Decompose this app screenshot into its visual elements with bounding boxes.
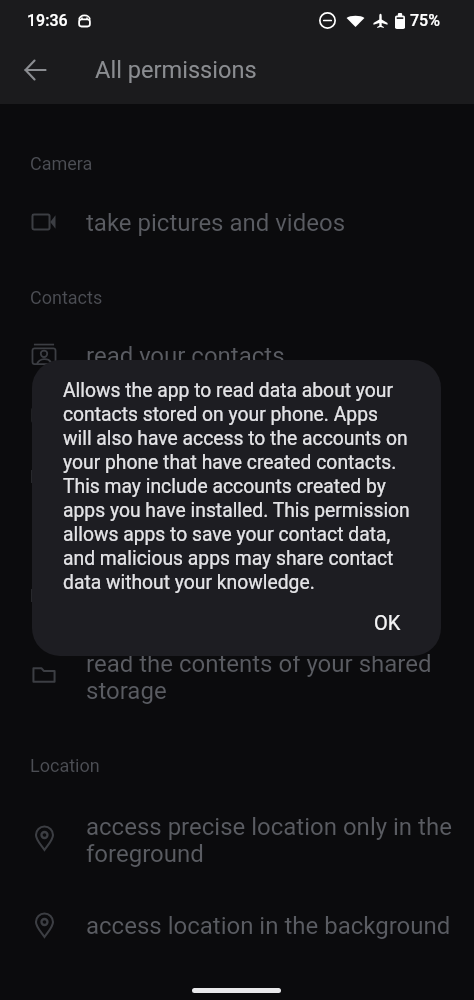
staticText: read the contents of your shared storage <box>86 651 464 705</box>
button[interactable]: access precise location only in the fore… <box>0 803 474 877</box>
staticText: access precise location only in the fore… <box>86 814 464 868</box>
staticText: Location <box>30 755 100 776</box>
staticText: read your contacts <box>86 343 464 370</box>
button[interactable]: Location <box>30 755 100 776</box>
button[interactable]: Microphone <box>30 466 126 487</box>
staticText: OK <box>374 611 401 634</box>
staticText: 75% <box>410 11 440 30</box>
button[interactable]: read the contents of your shared storage <box>0 640 474 714</box>
button[interactable]: access location in the background <box>0 902 474 949</box>
button[interactable]: record audio <box>0 511 474 558</box>
staticText: All permissions <box>95 56 257 84</box>
staticText: record audio <box>86 522 464 549</box>
staticText: Contacts <box>30 287 103 308</box>
button[interactable]: OK <box>360 603 415 642</box>
button[interactable]: Files and media <box>30 585 156 606</box>
staticText: Files and media <box>30 585 156 606</box>
staticText: Microphone <box>30 466 126 487</box>
staticText: 19:36 <box>27 11 68 30</box>
staticText: modify your contacts <box>86 402 464 429</box>
button[interactable]: read your contacts <box>0 332 474 379</box>
button[interactable]: modify your contacts <box>0 391 474 438</box>
button[interactable]: Navigate up <box>11 48 59 96</box>
button[interactable]: Camera <box>30 153 93 174</box>
button[interactable]: take pictures and videos <box>0 199 474 246</box>
staticText: Allows the app to read data about your c… <box>63 378 423 594</box>
staticText: take pictures and videos <box>86 210 464 237</box>
button[interactable]: Contacts <box>30 287 103 308</box>
staticText: access location in the background <box>86 913 464 940</box>
staticText: Camera <box>30 153 93 174</box>
